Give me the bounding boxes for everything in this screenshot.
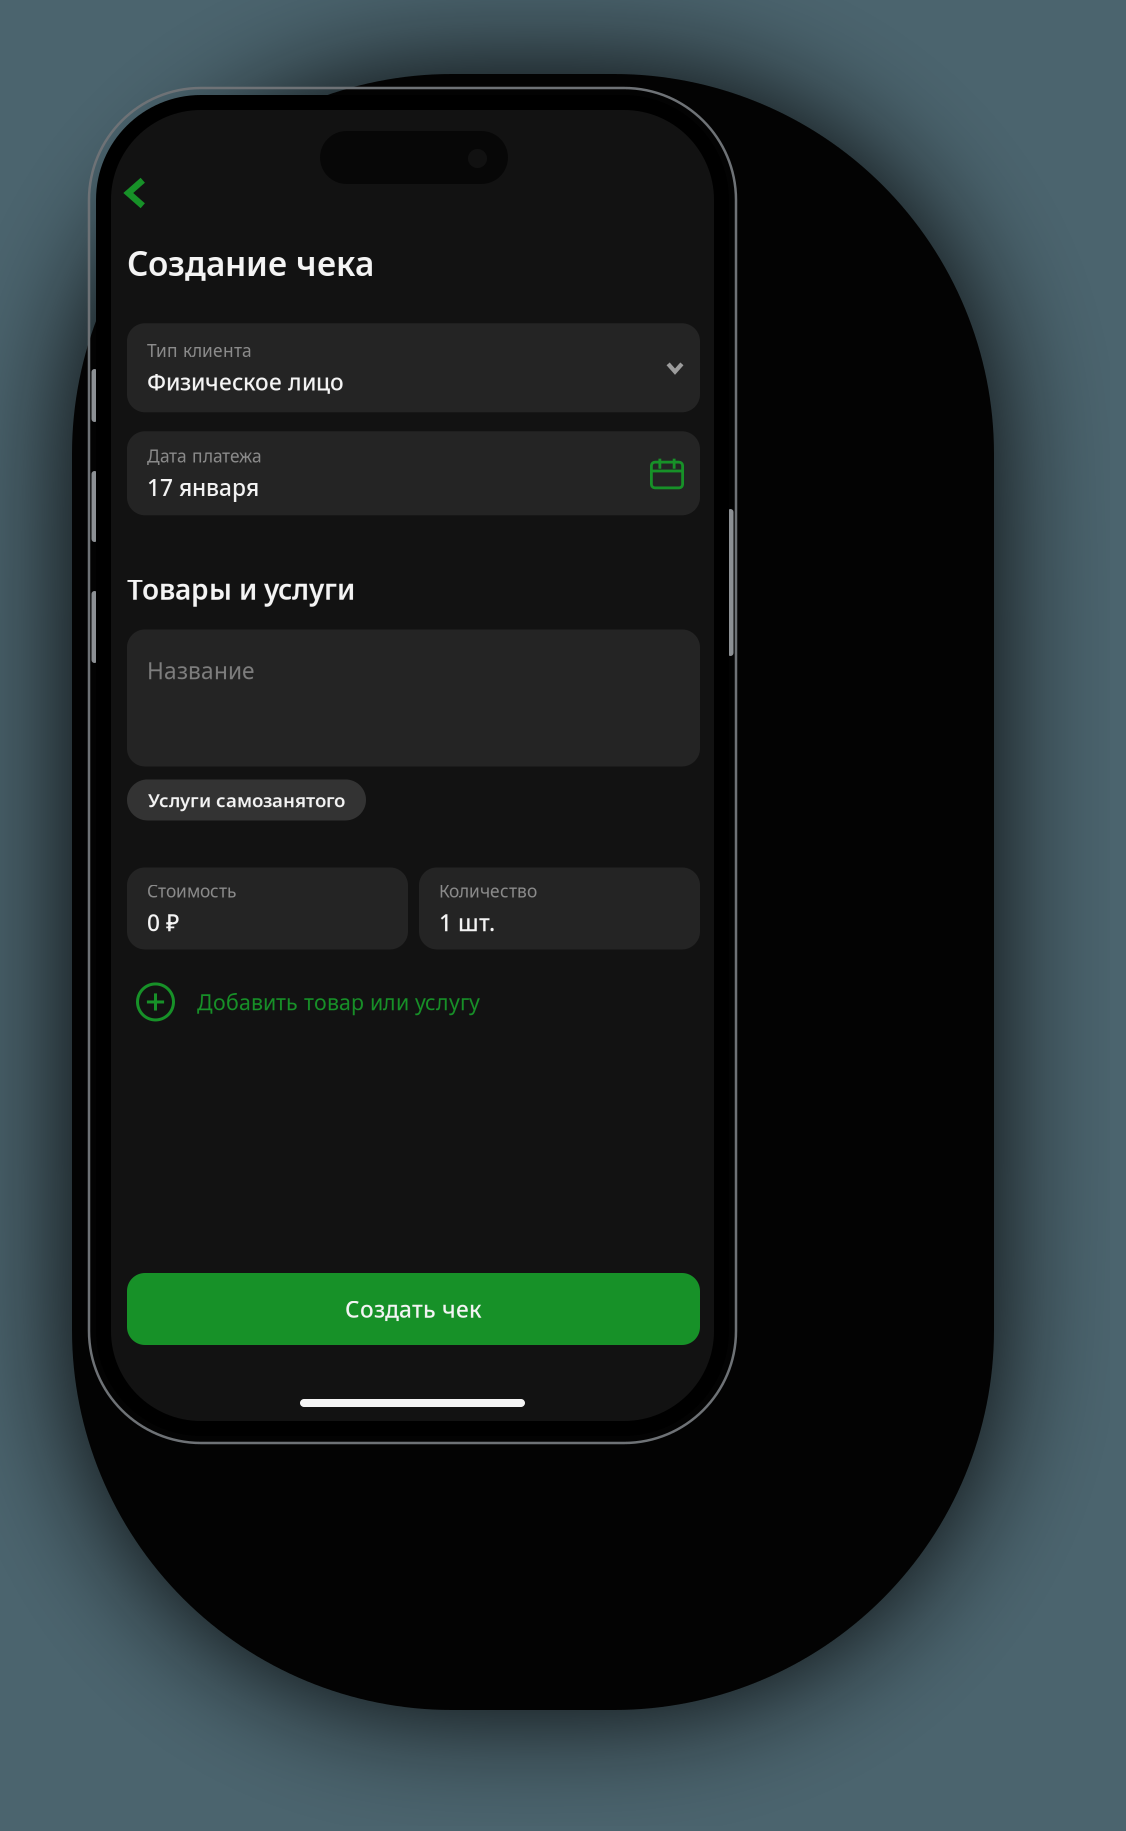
button[interactable]: Тип клиента bbox=[111, 323, 716, 412]
staticText: 1 шт. bbox=[439, 907, 495, 937]
button[interactable]: Добавить товар или услугу bbox=[111, 972, 480, 1031]
staticText: Количество bbox=[439, 879, 537, 902]
staticText: Тип клиента bbox=[147, 339, 252, 362]
button[interactable]: Дата платежа bbox=[111, 431, 716, 515]
button[interactable]: Стоимость bbox=[127, 867, 408, 949]
staticText: Товары и услуги bbox=[127, 570, 355, 607]
button[interactable]: Создать чек bbox=[111, 1273, 716, 1345]
staticText: Добавить товар или услугу bbox=[197, 988, 480, 1016]
staticText: Стоимость bbox=[147, 879, 236, 902]
staticText: Создать чек bbox=[345, 1294, 482, 1324]
staticText: 17 января bbox=[147, 472, 259, 502]
staticText: Услуги самозанятого bbox=[148, 788, 345, 812]
staticText: Физическое лицо bbox=[147, 367, 344, 397]
staticText: 0 ₽ bbox=[147, 907, 179, 937]
button[interactable]: Назад bbox=[111, 173, 173, 213]
button[interactable]: Количество bbox=[419, 867, 700, 949]
button[interactable]: Название bbox=[111, 629, 716, 766]
button[interactable]: Услуги самозанятого bbox=[111, 779, 366, 820]
staticText: Создание чека bbox=[127, 241, 374, 285]
staticText: Дата платежа bbox=[147, 444, 262, 467]
staticText: Название bbox=[147, 655, 254, 685]
